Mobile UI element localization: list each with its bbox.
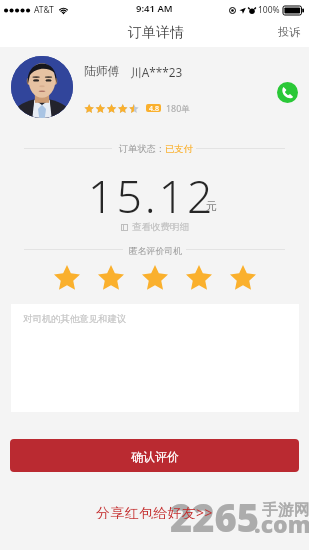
button[interactable]: Rate 1 star (54, 265, 80, 291)
button[interactable]: Call driver (277, 82, 298, 103)
staticText: 2265 (170, 491, 260, 543)
staticText: 投诉 (278, 25, 300, 39)
button[interactable]: 分享红包给好友>> (88, 498, 221, 524)
staticText: 订单详情 (128, 24, 184, 42)
staticText: 4.8 (149, 104, 159, 112)
staticText: 川A***23 (130, 64, 183, 80)
button[interactable]: 确认评价 (10, 439, 299, 472)
staticText: 确认评价 (131, 449, 179, 464)
staticText: 已支付 (165, 143, 193, 155)
staticText: 100% (258, 4, 280, 16)
button[interactable]: 查看收费明细 (115, 218, 195, 236)
staticText: 180单 (166, 102, 191, 114)
staticText: 匿名评价司机 (129, 246, 182, 257)
staticText: AT&T (34, 4, 54, 16)
button[interactable]: Rate 3 star (142, 265, 168, 291)
staticText: 订单状态： (119, 143, 165, 155)
button[interactable]: Rate 4 star (186, 265, 212, 291)
staticText: .com (254, 508, 309, 539)
button[interactable]: 投诉 (269, 20, 309, 46)
button[interactable]: Driver avatar (11, 56, 73, 118)
staticText: 陆师傅 (84, 64, 120, 79)
staticText: 手游网 (262, 500, 309, 520)
staticText: 分享红包给好友>> (96, 503, 213, 519)
staticText: 15.12 (88, 165, 216, 226)
staticText: 查看收费明细 (132, 221, 189, 233)
button[interactable]: 对司机的其他意见和建议 (11, 304, 299, 412)
staticText: 元 (206, 199, 217, 213)
button[interactable]: Rate 2 star (98, 265, 124, 291)
button[interactable]: Rate 5 star (230, 265, 256, 291)
staticText: 9:41 AM (136, 2, 173, 15)
staticText: 对司机的其他意见和建议 (23, 313, 127, 325)
